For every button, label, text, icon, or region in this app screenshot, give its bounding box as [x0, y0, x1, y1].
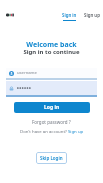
staticText: Log in — [44, 104, 60, 111]
button[interactable]: App logo — [5, 12, 15, 18]
staticText: Sign up — [84, 12, 100, 18]
button[interactable]: Log in — [14, 102, 90, 113]
button[interactable]: Skip Login — [36, 152, 67, 164]
staticText: Don't have an account? — [20, 128, 68, 134]
button[interactable]: Password — [6, 81, 97, 95]
button[interactable]: Sign up — [83, 9, 101, 23]
staticText: username — [17, 70, 37, 76]
button[interactable]: Sign up — [68, 128, 84, 134]
button[interactable]: User — [6, 68, 97, 78]
staticText: Welcome back — [0, 40, 103, 50]
button[interactable]: Forgot password ? — [29, 118, 74, 126]
staticText: Skip Login — [40, 155, 63, 161]
other: User — [9, 71, 14, 76]
staticText: Sign in — [62, 12, 77, 18]
staticText: Sign up — [68, 128, 84, 134]
other: Password — [9, 86, 14, 91]
button[interactable]: Sign in — [60, 9, 79, 23]
staticText: Forgot password ? — [32, 119, 71, 125]
staticText: Sign in to continue — [0, 48, 103, 56]
